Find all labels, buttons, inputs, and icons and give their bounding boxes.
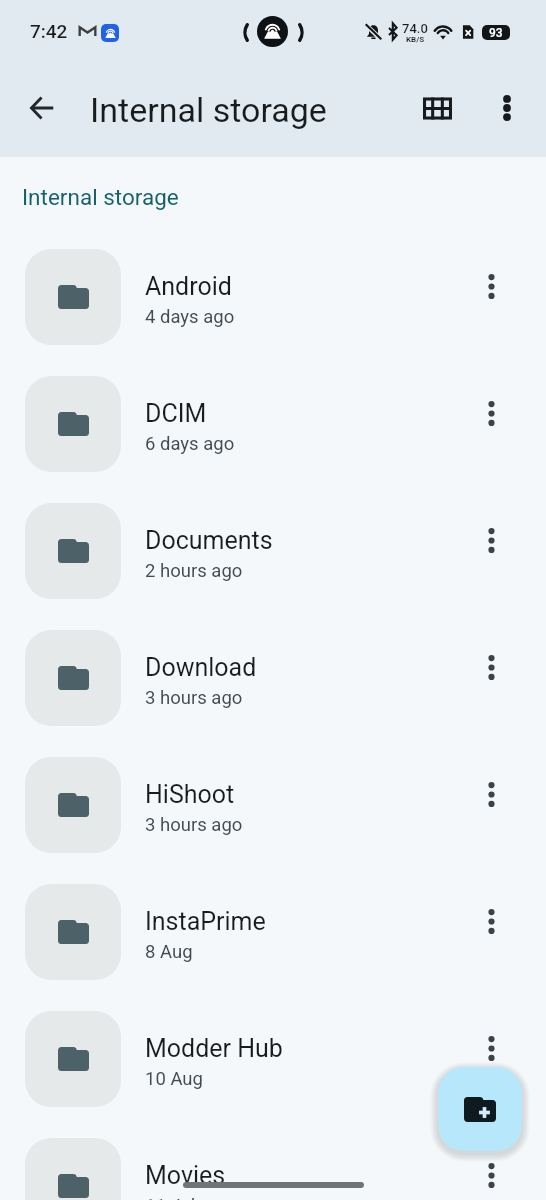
button[interactable]: Create new folder (438, 1067, 522, 1151)
staticText: InstaPrime (145, 907, 266, 936)
staticText: 7:42 (30, 20, 68, 42)
staticText: 4 days ago (145, 306, 235, 328)
button[interactable]: DCIM (0, 360, 546, 487)
staticText: Download (145, 653, 257, 682)
button[interactable]: Modder Hub (0, 995, 546, 1122)
staticText: HiShoot (145, 780, 235, 809)
button[interactable]: Grid view (413, 84, 461, 132)
staticText: 74.0 (402, 21, 428, 36)
button[interactable]: More options (463, 639, 519, 695)
staticText: KB/S (406, 35, 425, 44)
button[interactable]: HiShoot (0, 741, 546, 868)
button[interactable]: Back (18, 84, 66, 132)
button[interactable]: More options (463, 1020, 519, 1076)
button[interactable]: More options (463, 512, 519, 568)
button[interactable]: InstaPrime (0, 868, 546, 995)
button[interactable]: More options (463, 1147, 519, 1200)
staticText: Movies (145, 1161, 226, 1190)
staticText: 3 hours ago (145, 814, 243, 836)
button[interactable]: Documents (0, 487, 546, 614)
button[interactable]: More options (463, 258, 519, 314)
staticText: 93 (489, 26, 503, 40)
staticText: 11 Jul (145, 1195, 196, 1200)
staticText: 8 Aug (145, 941, 193, 963)
staticText: Android (145, 272, 232, 301)
button[interactable]: More options (463, 385, 519, 441)
staticText: 6 days ago (145, 433, 235, 455)
staticText: DCIM (145, 399, 207, 428)
staticText: Internal storage (22, 184, 179, 210)
button[interactable]: More options (463, 893, 519, 949)
staticText: Documents (145, 526, 273, 555)
staticText: Modder Hub (145, 1034, 283, 1063)
button[interactable]: Movies (0, 1122, 546, 1200)
staticText: 2 hours ago (145, 560, 243, 582)
button[interactable]: Android (0, 233, 546, 360)
button[interactable]: More options (483, 84, 531, 132)
staticText: 3 hours ago (145, 687, 243, 709)
staticText: Internal storage (90, 90, 327, 130)
button[interactable]: More options (463, 766, 519, 822)
staticText: 10 Aug (145, 1068, 203, 1090)
button[interactable]: Download (0, 614, 546, 741)
